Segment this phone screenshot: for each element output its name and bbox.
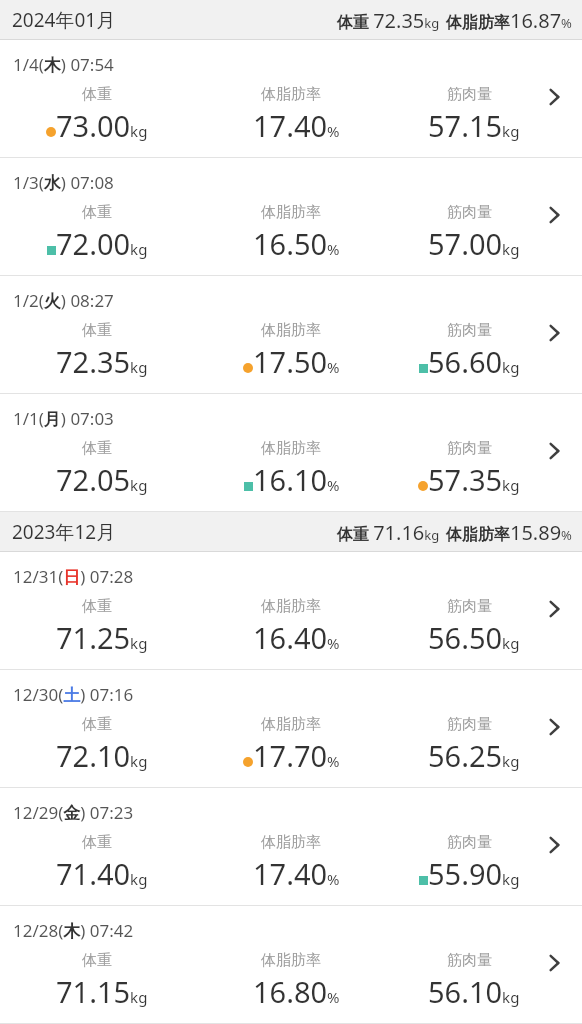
staticText: 体重 72.35kg 体脂肪率16.87% [337,7,572,34]
staticText: 筋肉量 [447,85,492,104]
staticText: 体脂肪率 [261,597,321,616]
staticText: 16.40% [253,618,340,657]
other: 詳細 [542,597,566,621]
staticText: 16.10% [253,460,340,499]
staticText: 56.50kg [428,618,520,657]
staticText: 57.35kg [428,460,520,499]
staticText: 17.40% [253,106,340,145]
button[interactable]: 12/28(木) 07:42 [0,906,582,1024]
staticText: 筋肉量 [447,439,492,458]
staticText: 体脂肪率 [261,203,321,222]
staticText: 72.10kg [56,736,148,775]
staticText: 体重 [82,203,112,222]
other: 詳細 [542,203,566,227]
staticText: 体重 [82,439,112,458]
staticText: 体脂肪率 [261,321,321,340]
staticText: 体脂肪率 [261,833,321,852]
staticText: 17.50% [253,342,340,381]
staticText: 1/4(木) 07:54 [13,53,114,76]
staticText: 2023年12月 [12,519,116,545]
staticText: 体重 [82,85,112,104]
staticText: 73.00kg [56,106,148,145]
staticText: 12/28(木) 07:42 [13,919,134,942]
button[interactable]: 12/30(土) 07:16 [0,670,582,788]
staticText: 71.15kg [56,972,148,1011]
other: 詳細 [542,951,566,975]
staticText: 56.10kg [428,972,520,1011]
staticText: 体重 [82,321,112,340]
button[interactable]: 1/3(水) 07:08 [0,158,582,276]
staticText: 72.05kg [56,460,148,499]
staticText: 体重 [82,597,112,616]
staticText: 体重 [82,715,112,734]
staticText: 55.90kg [428,854,520,893]
staticText: 72.00kg [56,224,148,263]
button[interactable]: 1/1(月) 07:03 [0,394,582,512]
staticText: 12/31(日) 07:28 [13,565,134,588]
other: 詳細 [542,715,566,739]
button[interactable]: 12/29(金) 07:23 [0,788,582,906]
staticText: 71.25kg [56,618,148,657]
staticText: 1/3(水) 07:08 [13,171,114,194]
staticText: 1/1(月) 07:03 [13,407,114,430]
staticText: 72.35kg [56,342,148,381]
other: 詳細 [542,85,566,109]
staticText: 57.15kg [428,106,520,145]
staticText: 56.25kg [428,736,520,775]
staticText: 1/2(火) 08:27 [13,289,114,312]
staticText: 体脂肪率 [261,85,321,104]
button[interactable]: 2024年01月 [0,0,582,40]
staticText: 筋肉量 [447,951,492,970]
staticText: 筋肉量 [447,597,492,616]
staticText: 56.60kg [428,342,520,381]
staticText: 筋肉量 [447,321,492,340]
button[interactable]: 1/2(火) 08:27 [0,276,582,394]
other: 詳細 [542,439,566,463]
staticText: 筋肉量 [447,833,492,852]
staticText: 16.50% [253,224,340,263]
button[interactable]: 2023年12月 [0,512,582,552]
staticText: 17.70% [253,736,340,775]
staticText: 筋肉量 [447,715,492,734]
staticText: 17.40% [253,854,340,893]
staticText: 筋肉量 [447,203,492,222]
staticText: 体脂肪率 [261,439,321,458]
staticText: 2024年01月 [12,7,116,33]
staticText: 体脂肪率 [261,951,321,970]
staticText: 71.40kg [56,854,148,893]
other: 詳細 [542,833,566,857]
staticText: 57.00kg [428,224,520,263]
button[interactable]: 12/31(日) 07:28 [0,552,582,670]
staticText: 12/29(金) 07:23 [13,801,134,824]
staticText: 体重 [82,951,112,970]
staticText: 体重 [82,833,112,852]
staticText: 12/30(土) 07:16 [13,683,134,706]
staticText: 16.80% [253,972,340,1011]
staticText: 体脂肪率 [261,715,321,734]
button[interactable]: 1/4(木) 07:54 [0,40,582,158]
staticText: 体重 71.16kg 体脂肪率15.89% [337,519,572,546]
other: 詳細 [542,321,566,345]
